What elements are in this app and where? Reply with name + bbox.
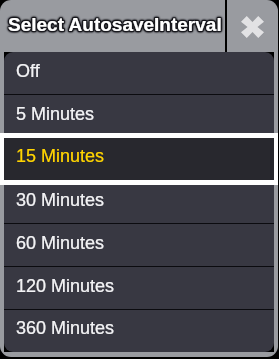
staticText: 15 Minutes: [16, 147, 105, 167]
staticText: Select AutosaveInterval: [7, 13, 221, 34]
staticText: Select AutosaveInterval: [8, 15, 222, 36]
button[interactable]: 5 Minutes: [4, 95, 274, 138]
staticText: Select AutosaveInterval: [9, 13, 223, 34]
button[interactable]: Close: [227, 0, 278, 52]
button[interactable]: 30 Minutes: [4, 181, 274, 224]
button[interactable]: 15 Minutes: [4, 138, 274, 180]
staticText: 60 Minutes: [16, 233, 105, 253]
button[interactable]: 120 Minutes: [4, 267, 274, 310]
staticText: Select AutosaveInterval: [8, 14, 222, 35]
staticText: 30 Minutes: [16, 190, 105, 210]
staticText: Select AutosaveInterval: [7, 14, 221, 35]
staticText: 360 Minutes: [16, 318, 115, 338]
button[interactable]: 60 Minutes: [4, 224, 274, 267]
button[interactable]: 15 Minutes: [4, 138, 274, 181]
staticText: Select AutosaveInterval: [8, 13, 222, 34]
button[interactable]: Select AutosaveInterval: [0, 0, 225, 52]
staticText: Select AutosaveInterval: [9, 15, 223, 36]
staticText: 15 Minutes: [16, 146, 105, 166]
button[interactable]: Off: [4, 52, 274, 95]
staticText: 5 Minutes: [16, 104, 95, 124]
staticText: Off: [16, 61, 40, 81]
staticText: 120 Minutes: [16, 276, 115, 296]
staticText: Select AutosaveInterval: [7, 15, 221, 36]
staticText: Select AutosaveInterval: [9, 14, 223, 35]
button[interactable]: 360 Minutes: [4, 310, 274, 352]
